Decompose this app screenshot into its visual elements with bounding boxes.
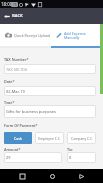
button[interactable]: 0 xyxy=(67,152,96,163)
button[interactable]: Add Expense Manually xyxy=(51,24,103,46)
button[interactable]: Recents xyxy=(15,169,29,183)
staticText: Employee C.C. xyxy=(38,136,61,141)
staticText: Quick Receipt Upload xyxy=(14,33,51,38)
button[interactable]: 02-Mar-19 xyxy=(4,86,96,96)
staticText: Tip xyxy=(67,147,73,151)
staticText: Cash xyxy=(14,136,22,141)
staticText: TAX NO ID# xyxy=(6,67,28,72)
button[interactable]: TAX NO ID# xyxy=(4,64,96,74)
staticText: 29 xyxy=(6,155,11,160)
staticText: 75 xyxy=(13,3,17,7)
staticText: Type* xyxy=(4,100,15,104)
button[interactable]: Home xyxy=(45,169,59,183)
button[interactable]: 29 xyxy=(4,152,62,163)
staticText: 18:00 xyxy=(1,1,13,7)
staticText: Gifts for business purposes xyxy=(6,109,56,114)
button[interactable]: Company C.C. xyxy=(67,132,96,144)
staticText: 0 xyxy=(69,155,72,160)
button[interactable]: Cash xyxy=(4,132,32,144)
staticText: Form Of Payment* xyxy=(4,123,38,127)
button[interactable]: BACK xyxy=(0,8,103,24)
staticText: TAX Number* xyxy=(4,57,29,61)
button[interactable]: Gifts for business purposes xyxy=(4,105,96,118)
staticText: Company C.C. xyxy=(71,136,93,141)
staticText: Add Expense Manually xyxy=(64,31,86,40)
button[interactable]: Quick Receipt Upload xyxy=(0,24,51,46)
staticText: BACK xyxy=(12,13,23,19)
button[interactable]: Employee C.C. xyxy=(35,132,64,144)
staticText: 02-Mar-19 xyxy=(6,89,25,94)
button[interactable]: Back xyxy=(74,169,88,183)
staticText: Amount* xyxy=(4,147,21,151)
staticText: Date* xyxy=(4,79,15,83)
